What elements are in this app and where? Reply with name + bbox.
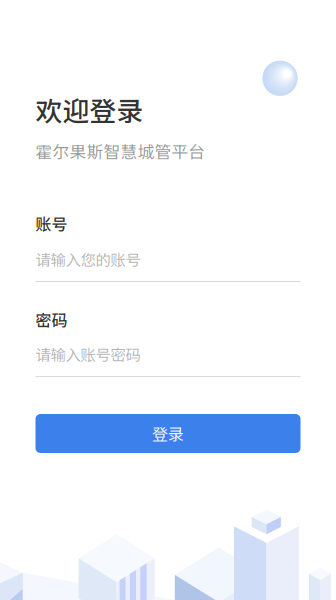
- staticText: 密码: [35, 308, 67, 331]
- staticText: 欢迎登录: [35, 90, 143, 129]
- staticText: 请输入您的账号: [35, 248, 140, 270]
- staticText: 登录: [152, 422, 184, 445]
- staticText: 账号: [35, 212, 67, 235]
- staticText: 霍尔果斯智慧城管平台: [35, 139, 205, 163]
- staticText: 请输入账号密码: [35, 343, 140, 365]
- button[interactable]: 登录: [35, 414, 300, 453]
